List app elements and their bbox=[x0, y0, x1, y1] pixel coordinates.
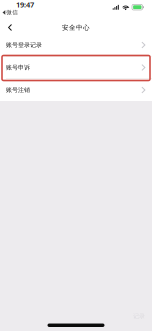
staticText: 账号登录记录 bbox=[6, 41, 42, 49]
staticText: 记录 bbox=[133, 312, 145, 320]
button[interactable]: Back to WeChat bbox=[2, 9, 18, 16]
staticText: 账号注销 bbox=[6, 86, 30, 94]
staticText: 微信 bbox=[6, 9, 18, 16]
button[interactable]: 账号登录记录 bbox=[0, 34, 152, 56]
staticText: 19:47 bbox=[16, 0, 34, 10]
button[interactable]: 账号申诉 bbox=[0, 56, 152, 78]
button[interactable]: Back bbox=[0, 22, 24, 33]
staticText: 安全中心 bbox=[62, 23, 90, 32]
staticText: 账号申诉 bbox=[6, 64, 30, 71]
button[interactable]: 账号注销 bbox=[0, 79, 152, 101]
